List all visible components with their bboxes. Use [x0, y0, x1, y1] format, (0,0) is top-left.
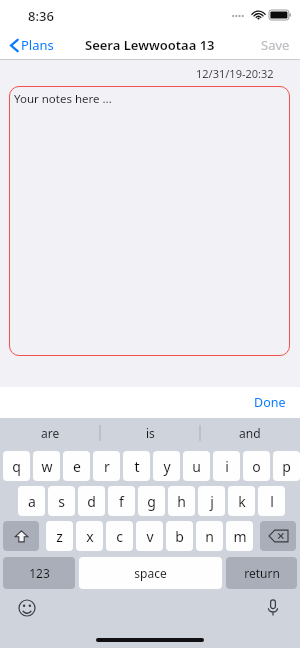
- staticText: are: [41, 425, 60, 441]
- staticText: y: [163, 457, 171, 476]
- button[interactable]: r: [93, 451, 120, 481]
- staticText: t: [134, 457, 140, 476]
- staticText: and: [239, 425, 261, 441]
- button[interactable]: y: [153, 451, 180, 481]
- staticText: v: [146, 527, 154, 546]
- button[interactable]: q: [3, 451, 30, 481]
- staticText: 12/31/19-20:32: [196, 66, 274, 81]
- staticText: space: [134, 565, 167, 581]
- staticText: k: [238, 492, 246, 511]
- button[interactable]: p: [273, 451, 300, 481]
- button[interactable]: a: [18, 486, 45, 516]
- button[interactable]: w: [33, 451, 60, 481]
- staticText: i: [225, 457, 229, 476]
- button[interactable]: g: [138, 486, 165, 516]
- staticText: a: [28, 492, 36, 511]
- staticText: h: [177, 492, 186, 511]
- button[interactable]: d: [78, 486, 105, 516]
- staticText: f: [119, 492, 124, 511]
- button[interactable]: is: [100, 418, 200, 448]
- button[interactable]: j: [198, 486, 225, 516]
- staticText: return: [244, 565, 280, 581]
- button[interactable]: Save: [251, 31, 300, 59]
- staticText: 123: [29, 565, 50, 581]
- button[interactable]: h: [168, 486, 195, 516]
- staticText: m: [233, 527, 247, 546]
- button[interactable]: Emoji: [16, 597, 38, 619]
- button[interactable]: Shift: [3, 521, 39, 551]
- staticText: is: [146, 425, 155, 441]
- button[interactable]: z: [46, 521, 73, 551]
- staticText: c: [116, 527, 123, 546]
- staticText: p: [282, 457, 291, 476]
- staticText: d: [87, 492, 96, 511]
- staticText: q: [12, 457, 21, 476]
- staticText: j: [210, 492, 214, 511]
- staticText: Save: [261, 36, 290, 54]
- staticText: z: [56, 527, 63, 546]
- button[interactable]: m: [226, 521, 253, 551]
- staticText: b: [175, 527, 184, 546]
- staticText: x: [86, 527, 94, 546]
- staticText: Plans: [21, 36, 54, 54]
- staticText: Your notes here ...: [14, 91, 112, 107]
- staticText: s: [58, 492, 65, 511]
- button[interactable]: e: [63, 451, 90, 481]
- button[interactable]: n: [196, 521, 223, 551]
- staticText: l: [270, 492, 274, 511]
- button[interactable]: Backspace: [260, 521, 296, 551]
- button[interactable]: Plans: [7, 32, 57, 58]
- button[interactable]: space: [79, 557, 222, 589]
- button[interactable]: l: [258, 486, 285, 516]
- staticText: o: [252, 457, 261, 476]
- button[interactable]: k: [228, 486, 255, 516]
- button[interactable]: t: [123, 451, 150, 481]
- button[interactable]: 123: [3, 557, 75, 589]
- button[interactable]: x: [76, 521, 103, 551]
- button[interactable]: Dictate: [262, 597, 284, 619]
- button[interactable]: Your notes here ...: [9, 86, 290, 356]
- button[interactable]: v: [136, 521, 163, 551]
- staticText: r: [104, 457, 110, 476]
- button[interactable]: b: [166, 521, 193, 551]
- button[interactable]: s: [48, 486, 75, 516]
- button[interactable]: and: [200, 418, 300, 448]
- button[interactable]: f: [108, 486, 135, 516]
- staticText: Seera Lewwootaa 13: [85, 36, 215, 54]
- button[interactable]: Done: [240, 389, 300, 416]
- staticText: g: [147, 492, 156, 511]
- button[interactable]: return: [226, 557, 297, 589]
- staticText: e: [73, 457, 81, 476]
- button[interactable]: o: [243, 451, 270, 481]
- staticText: 8:36: [28, 7, 54, 25]
- staticText: Done: [254, 394, 286, 411]
- button[interactable]: c: [106, 521, 133, 551]
- button[interactable]: u: [183, 451, 210, 481]
- staticText: n: [205, 527, 214, 546]
- button[interactable]: are: [0, 418, 100, 448]
- button[interactable]: i: [213, 451, 240, 481]
- staticText: w: [41, 457, 53, 476]
- staticText: u: [192, 457, 201, 476]
